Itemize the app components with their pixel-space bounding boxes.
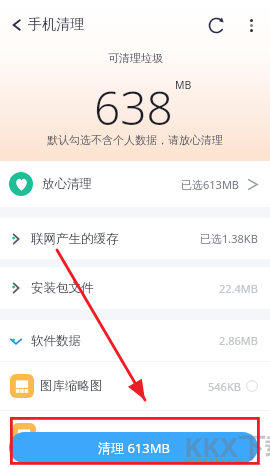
staticText: 2.86MB bbox=[219, 333, 258, 348]
staticText: KKX下载 bbox=[184, 428, 270, 465]
staticText: www.kkx.net bbox=[184, 454, 244, 467]
staticText: 放心清理 bbox=[42, 176, 92, 192]
staticText: 默认勾选不含个人数据，请放心清理 bbox=[47, 133, 223, 147]
button[interactable]: Refresh bbox=[199, 8, 233, 42]
staticText: 638 bbox=[94, 76, 173, 139]
button[interactable]: 放心清理 bbox=[0, 161, 270, 207]
button[interactable] bbox=[0, 411, 270, 458]
button[interactable]: 安装包文件 bbox=[0, 267, 270, 309]
button[interactable]: More options bbox=[235, 9, 267, 41]
button[interactable]: 联网产生的缓存 bbox=[0, 218, 270, 259]
button[interactable]: 软件数据 bbox=[0, 320, 270, 361]
staticText: 已选1.38KB bbox=[200, 231, 258, 246]
staticText: 可清理垃圾 bbox=[108, 51, 163, 65]
staticText: 22.4MB bbox=[219, 281, 258, 296]
staticText: 546KB bbox=[208, 379, 241, 394]
button[interactable]: Back bbox=[0, 9, 32, 41]
button[interactable]: 图库缩略图 bbox=[0, 362, 270, 410]
button[interactable]: 清理 613MB bbox=[9, 432, 258, 463]
staticText: 清理 613MB bbox=[98, 439, 170, 457]
staticText: 软件数据 bbox=[31, 333, 81, 349]
staticText: 安装包文件 bbox=[31, 280, 94, 296]
staticText: 联网产生的缓存 bbox=[31, 231, 119, 247]
staticText: MB bbox=[175, 78, 192, 92]
staticText: 已选613MB bbox=[181, 177, 240, 192]
staticText: 图库缩略图 bbox=[40, 378, 103, 394]
staticText: 手机清理 bbox=[28, 16, 84, 34]
